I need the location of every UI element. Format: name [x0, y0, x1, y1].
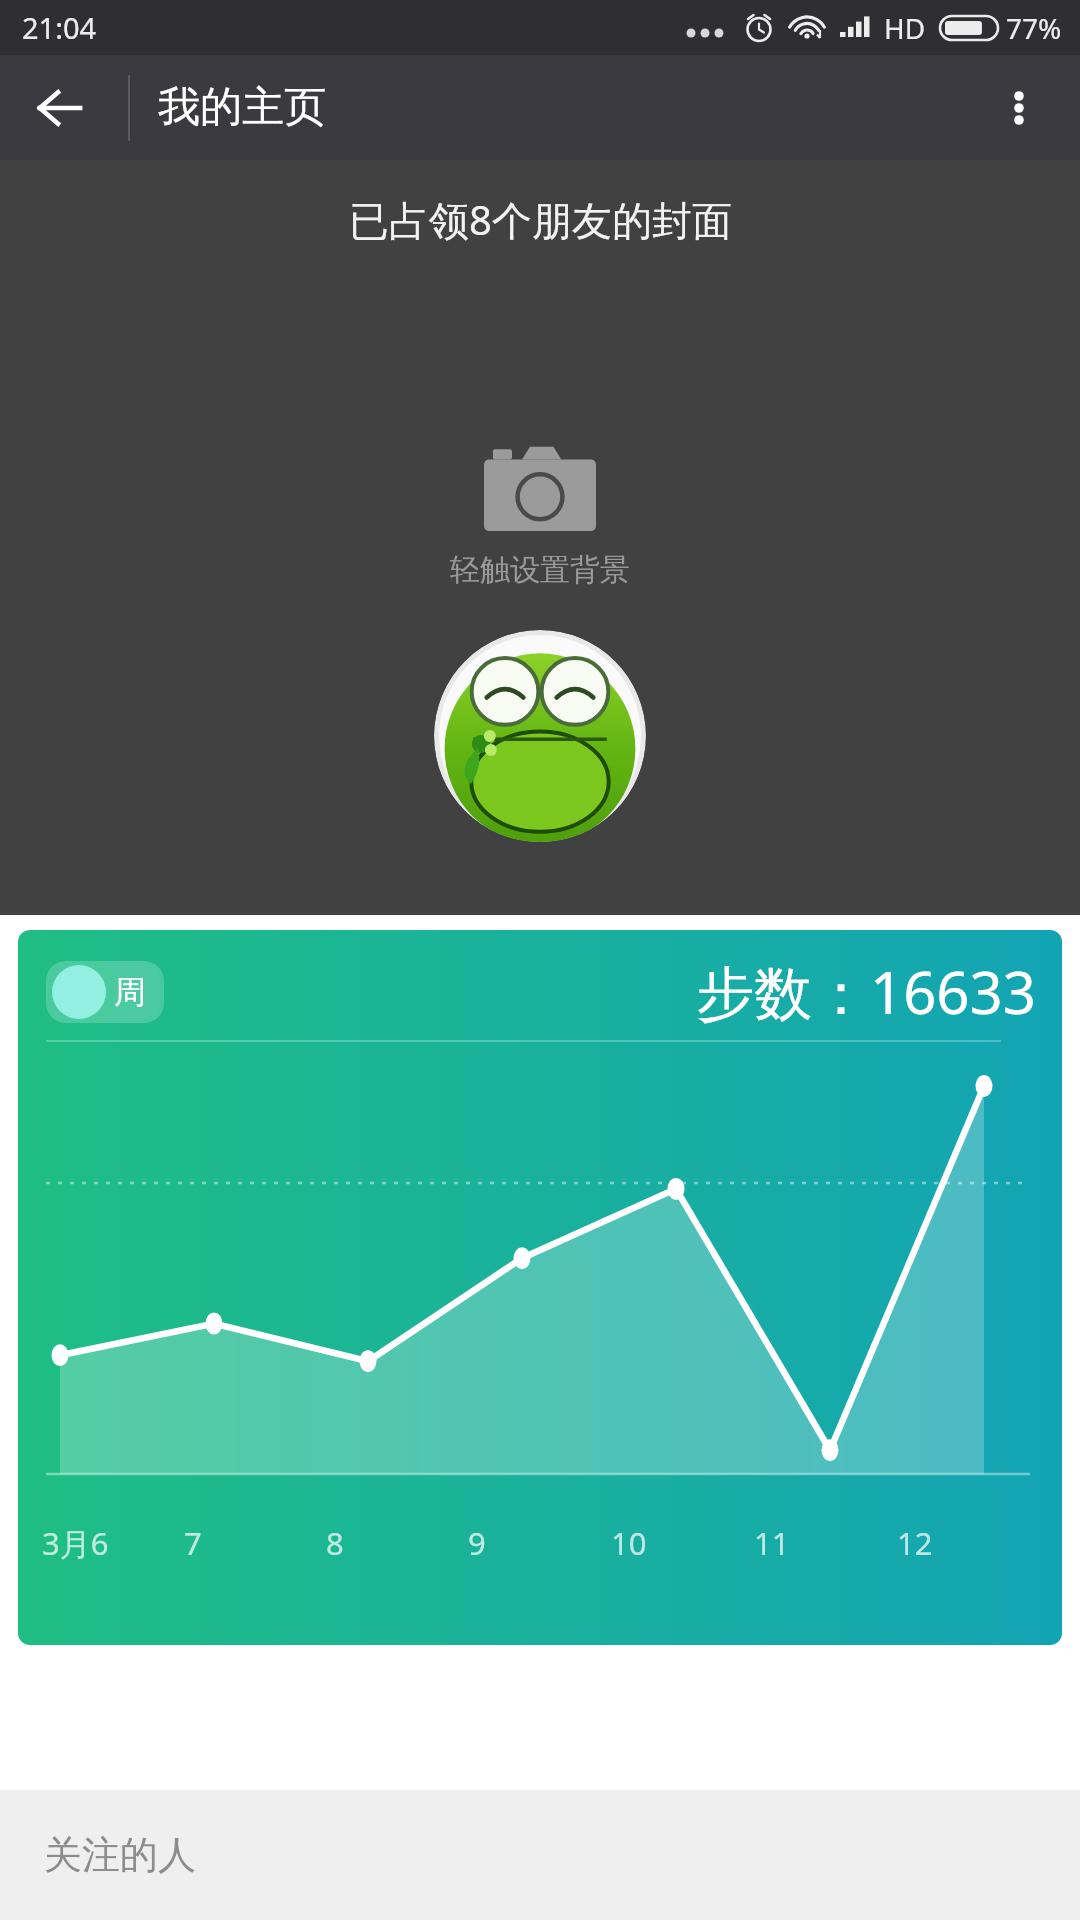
- staticText: 关注的人: [44, 1831, 196, 1879]
- staticText: 8: [326, 1522, 344, 1564]
- button[interactable]: Back: [18, 66, 102, 150]
- staticText: 12: [897, 1522, 933, 1564]
- button[interactable]: More options: [974, 63, 1064, 153]
- staticText: 3月6: [42, 1522, 109, 1564]
- staticText: 7: [184, 1522, 202, 1564]
- staticText: 21:04: [22, 8, 97, 47]
- button[interactable]: [0, 160, 1080, 915]
- staticText: 10: [611, 1522, 647, 1564]
- staticText: 77%: [1006, 9, 1062, 47]
- button[interactable]: 周: [46, 961, 164, 1023]
- staticText: 轻触设置背景: [450, 551, 630, 589]
- button[interactable]: Profile avatar: [434, 630, 646, 842]
- staticText: 11: [754, 1522, 790, 1564]
- staticText: 周: [114, 972, 146, 1012]
- staticText: 已占领8个朋友的封面: [349, 192, 732, 247]
- staticText: 我的主页: [158, 81, 326, 134]
- button[interactable]: 关注的人: [0, 1790, 1080, 1920]
- button[interactable]: 周: [18, 930, 1062, 1645]
- staticText: 步数：16633: [696, 952, 1036, 1031]
- staticText: 9: [468, 1522, 486, 1564]
- button[interactable]: Set background: [450, 445, 630, 589]
- staticText: HD: [884, 9, 926, 47]
